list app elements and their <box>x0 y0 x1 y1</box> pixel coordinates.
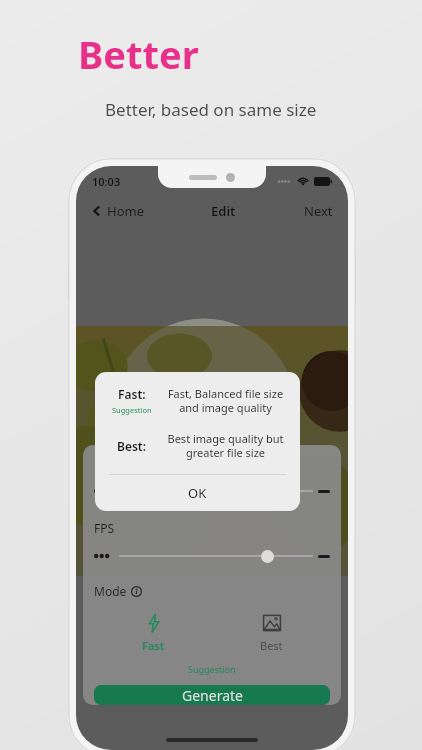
staticText: Dimension <box>94 455 155 471</box>
button[interactable]: OK <box>95 475 300 511</box>
button[interactable]: Next <box>301 198 336 224</box>
staticText: OK <box>188 484 207 502</box>
staticText: Better <box>78 28 199 80</box>
staticText: Edit <box>211 202 236 220</box>
button[interactable]: Mode info <box>131 586 142 597</box>
staticText: Better, based on same size <box>105 98 317 121</box>
staticText: Generate <box>182 686 243 705</box>
staticText: Suggestion <box>188 663 236 675</box>
staticText: Fast: <box>118 386 146 402</box>
staticText: Fast, Balanced file size and image quali… <box>160 386 291 415</box>
button[interactable]: Fast <box>138 609 169 657</box>
staticText: Next <box>304 202 333 220</box>
button[interactable]: Best <box>256 609 287 657</box>
staticText: Suggestion <box>112 405 152 415</box>
staticText: Home <box>107 202 144 220</box>
button[interactable]: Home <box>88 198 147 224</box>
staticText: Best image quality but greater file size <box>160 431 291 460</box>
staticText: Mode <box>94 583 127 599</box>
button[interactable]: Generate <box>94 685 330 705</box>
staticText: Fast <box>142 638 165 653</box>
staticText: Best: <box>117 438 147 454</box>
staticText: FPS <box>94 520 115 536</box>
button[interactable]: Slider thumb <box>261 550 274 563</box>
staticText: Best <box>260 638 283 653</box>
staticText: 10:03 <box>92 174 121 189</box>
